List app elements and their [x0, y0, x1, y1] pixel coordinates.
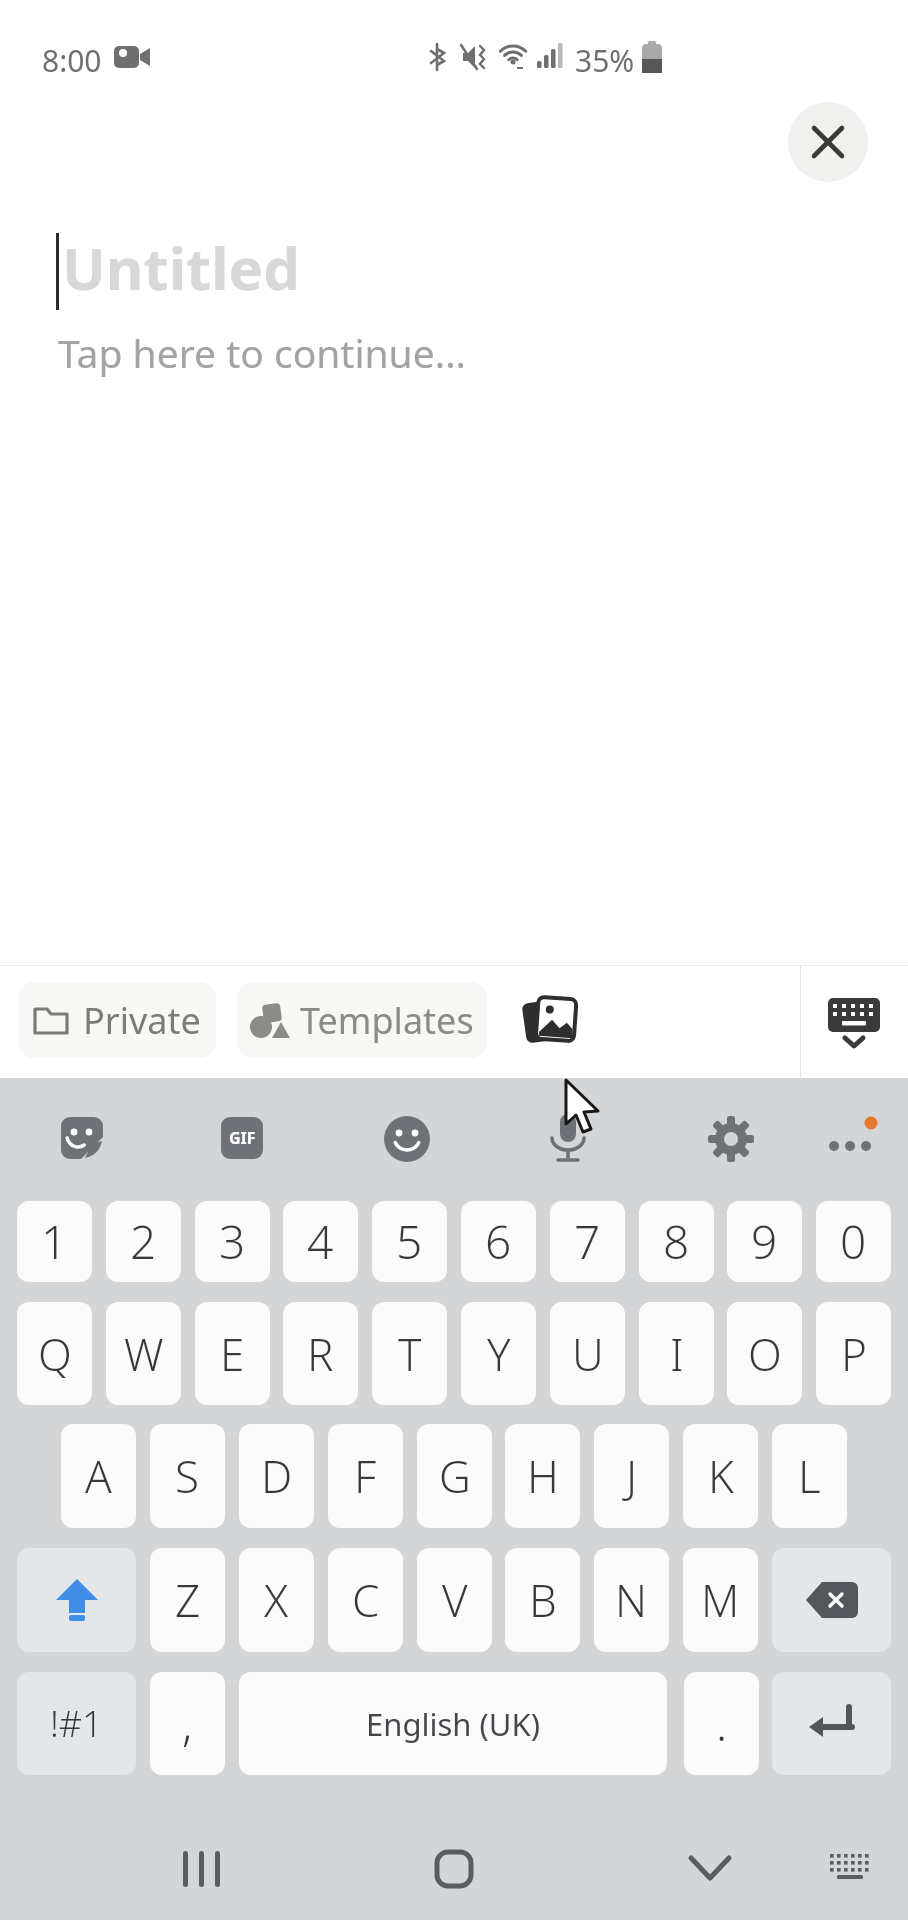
button[interactable]: Y — [461, 1302, 536, 1405]
staticText: L — [798, 1446, 821, 1506]
button[interactable]: D — [239, 1424, 314, 1528]
staticText: 0 — [840, 1210, 867, 1273]
staticText: 3 — [219, 1210, 246, 1273]
button[interactable]: 5 — [372, 1201, 447, 1282]
button[interactable]: X — [239, 1548, 314, 1652]
staticText: J — [626, 1446, 638, 1506]
button[interactable]: L — [772, 1424, 847, 1528]
staticText: E — [220, 1324, 245, 1384]
button[interactable] — [788, 102, 868, 182]
staticText: 35% — [575, 40, 635, 81]
staticText: Z — [175, 1570, 201, 1630]
staticText: B — [529, 1570, 557, 1630]
button[interactable]: C — [328, 1548, 403, 1652]
button[interactable] — [542, 1112, 594, 1168]
button[interactable]: T — [372, 1302, 447, 1405]
staticText: 4 — [307, 1210, 334, 1273]
button[interactable] — [810, 1826, 890, 1912]
staticText: R — [307, 1324, 334, 1384]
button[interactable] — [706, 1114, 756, 1164]
button[interactable]: K — [683, 1424, 758, 1528]
button[interactable]: 2 — [106, 1201, 181, 1282]
button[interactable] — [812, 987, 896, 1057]
staticText: U — [572, 1324, 604, 1384]
button[interactable] — [518, 987, 584, 1053]
button[interactable]: , — [150, 1672, 225, 1775]
staticText: Tap here to continue... — [58, 326, 467, 379]
staticText: O — [748, 1324, 782, 1384]
button[interactable]: !#1 — [17, 1672, 136, 1775]
staticText: Q — [38, 1324, 72, 1384]
button[interactable]: S — [150, 1424, 225, 1528]
staticText: GIF — [229, 1127, 256, 1149]
button[interactable]: P — [816, 1302, 891, 1405]
button[interactable]: English (UK) — [239, 1672, 667, 1775]
button[interactable] — [160, 1826, 246, 1912]
button[interactable]: I — [639, 1302, 714, 1405]
staticText: Templates — [300, 996, 474, 1045]
button[interactable]: 9 — [727, 1201, 802, 1282]
button[interactable] — [54, 1110, 110, 1166]
staticText: A — [85, 1446, 112, 1506]
button[interactable]: H — [505, 1424, 580, 1528]
staticText: 9 — [751, 1210, 778, 1273]
button[interactable]: . — [684, 1672, 759, 1775]
button[interactable]: 7 — [550, 1201, 625, 1282]
button[interactable]: N — [594, 1548, 669, 1652]
button[interactable]: V — [417, 1548, 492, 1652]
staticText: !#1 — [50, 1699, 103, 1748]
button[interactable]: 3 — [195, 1201, 270, 1282]
staticText: X — [264, 1570, 289, 1630]
staticText: T — [398, 1324, 422, 1384]
button[interactable]: W — [106, 1302, 181, 1405]
button[interactable]: GIF — [221, 1117, 263, 1159]
button[interactable]: 1 — [17, 1201, 92, 1282]
button[interactable]: Templates — [237, 982, 487, 1058]
button[interactable]: E — [195, 1302, 270, 1405]
staticText: I — [670, 1324, 684, 1384]
button[interactable]: M — [683, 1548, 758, 1652]
button[interactable] — [411, 1826, 497, 1912]
staticText: 8:00 — [42, 40, 102, 81]
staticText: K — [708, 1446, 734, 1506]
button[interactable]: O — [727, 1302, 802, 1405]
staticText: Private — [83, 996, 201, 1045]
button[interactable]: G — [417, 1424, 492, 1528]
button[interactable]: J — [594, 1424, 669, 1528]
button[interactable] — [772, 1672, 891, 1775]
button[interactable] — [382, 1114, 432, 1164]
staticText: P — [841, 1324, 867, 1384]
button[interactable]: F — [328, 1424, 403, 1528]
button[interactable]: U — [550, 1302, 625, 1405]
staticText: English (UK) — [366, 1703, 540, 1745]
staticText: , — [182, 1692, 193, 1755]
staticText: W — [124, 1324, 164, 1384]
staticText: . — [716, 1692, 728, 1755]
button[interactable]: B — [505, 1548, 580, 1652]
staticText: V — [442, 1570, 468, 1630]
button[interactable]: R — [283, 1302, 358, 1405]
button[interactable] — [772, 1548, 891, 1652]
button[interactable]: Tap here to continue... — [0, 320, 908, 390]
button[interactable] — [820, 1114, 886, 1164]
staticText: S — [175, 1446, 200, 1506]
staticText: H — [527, 1446, 559, 1506]
button[interactable]: 6 — [461, 1201, 536, 1282]
button[interactable]: Private — [18, 982, 216, 1058]
staticText: N — [615, 1570, 648, 1630]
button[interactable]: 4 — [283, 1201, 358, 1282]
button[interactable] — [17, 1548, 136, 1652]
button[interactable]: Z — [150, 1548, 225, 1652]
button[interactable]: A — [61, 1424, 136, 1528]
staticText: 5 — [396, 1210, 423, 1273]
button[interactable]: 0 — [816, 1201, 891, 1282]
button[interactable]: 8 — [639, 1201, 714, 1282]
button[interactable] — [667, 1826, 753, 1912]
staticText: 7 — [574, 1210, 601, 1273]
staticText: Untitled — [62, 228, 300, 307]
staticText: F — [354, 1446, 377, 1506]
staticText: M — [701, 1570, 740, 1630]
staticText: Y — [487, 1324, 511, 1384]
button[interactable]: Q — [17, 1302, 92, 1405]
staticText: D — [261, 1446, 293, 1506]
